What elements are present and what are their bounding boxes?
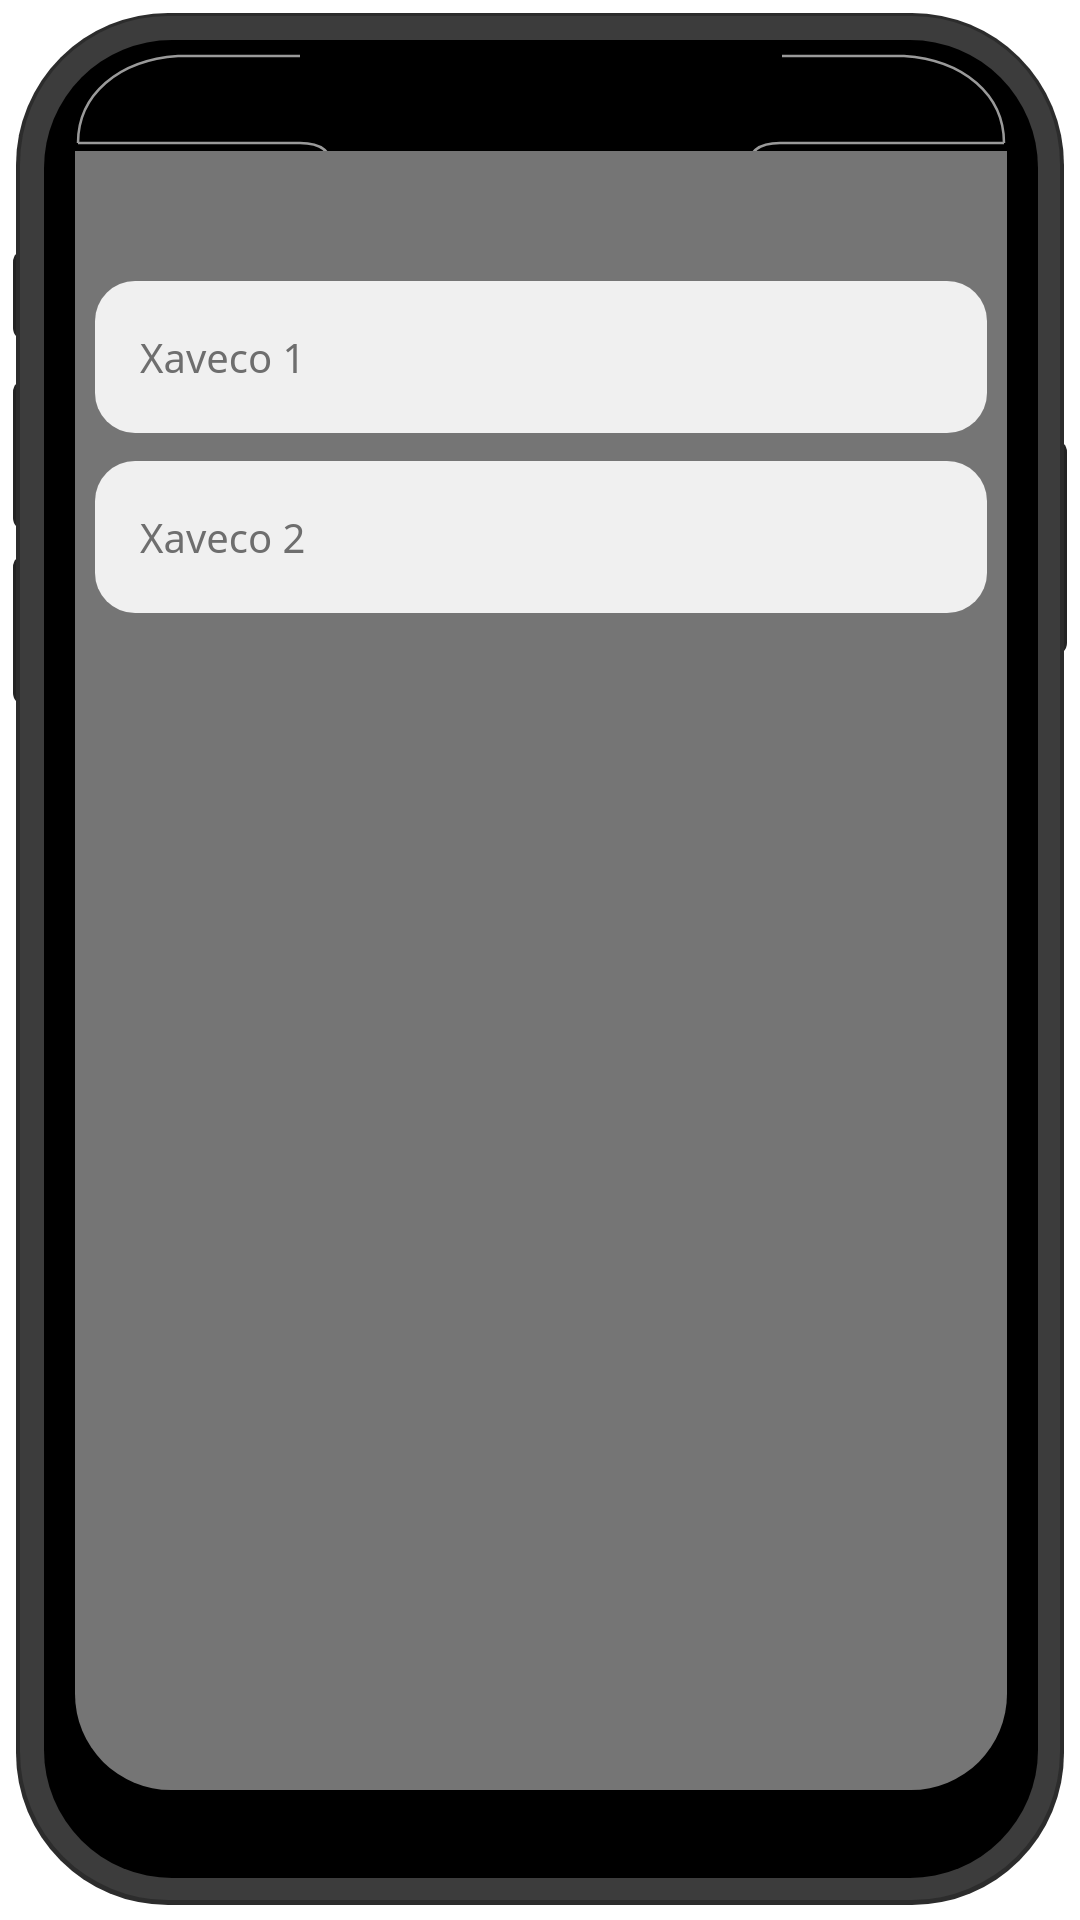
button[interactable]: Xaveco 2 [95, 461, 987, 613]
button[interactable]: Xaveco 1 [95, 281, 987, 433]
staticText: Xaveco 2 [140, 510, 306, 564]
staticText: Xaveco 1 [140, 330, 306, 384]
